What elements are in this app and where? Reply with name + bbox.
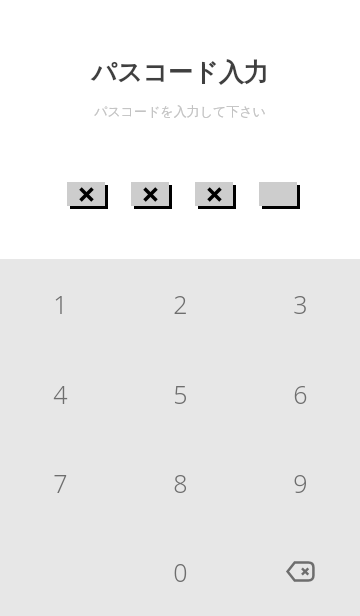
button[interactable]: 7 <box>0 438 120 527</box>
staticText: 5 <box>173 377 188 411</box>
button[interactable]: 4 <box>0 349 120 438</box>
button[interactable]: 8 <box>120 438 240 527</box>
button[interactable] <box>131 182 172 209</box>
button[interactable]: 5 <box>120 349 240 438</box>
button[interactable]: 0 <box>120 527 240 616</box>
staticText: 0 <box>173 555 188 589</box>
button[interactable]: Backspace <box>240 527 360 616</box>
button[interactable]: 2 <box>120 259 240 349</box>
button[interactable] <box>67 182 108 209</box>
button[interactable]: 9 <box>240 438 360 527</box>
staticText: パスコード入力 <box>0 57 360 88</box>
button[interactable]: 1 <box>0 259 120 349</box>
staticText: 4 <box>53 377 68 411</box>
staticText: 8 <box>173 466 188 500</box>
staticText: 9 <box>293 466 308 500</box>
staticText: 6 <box>293 377 308 411</box>
staticText: 1 <box>53 287 68 321</box>
staticText: 3 <box>293 287 308 321</box>
button[interactable] <box>195 182 236 209</box>
staticText: パスコードを入力して下さい <box>0 103 360 119</box>
staticText: 2 <box>173 287 188 321</box>
staticText: 7 <box>53 466 68 500</box>
button[interactable] <box>259 182 300 209</box>
button[interactable]: 6 <box>240 349 360 438</box>
button[interactable]: 3 <box>240 259 360 349</box>
